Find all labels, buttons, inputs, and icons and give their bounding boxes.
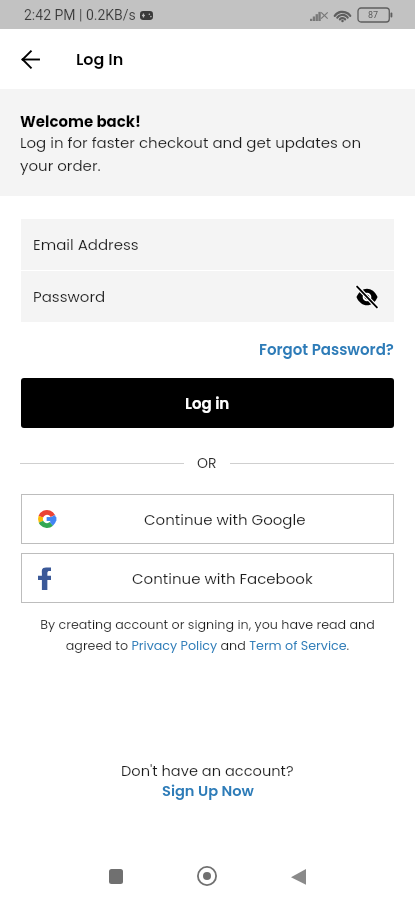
button[interactable]: Back — [275, 853, 321, 899]
button[interactable]: Log in — [21, 378, 394, 428]
staticText: Continue with Facebook — [132, 568, 313, 589]
staticText: Welcome back! — [20, 111, 141, 132]
staticText: Sign Up Now — [162, 781, 254, 801]
staticText: Log In — [76, 48, 124, 70]
staticText: Log in — [185, 393, 230, 414]
staticText: Log in for faster checkout and get updat… — [20, 132, 395, 176]
staticText: Don't have an account? — [121, 761, 294, 781]
button[interactable]: Password — [21, 271, 394, 322]
button[interactable]: Back — [10, 39, 50, 79]
button[interactable]: Continue with Google — [21, 494, 394, 544]
staticText: Forgot Password? — [259, 339, 394, 360]
button[interactable]: Continue with Facebook — [21, 553, 394, 603]
button[interactable]: Forgot Password? — [259, 339, 394, 360]
button[interactable]: Sign Up Now — [162, 781, 254, 801]
staticText: 2:42 PM | 0.2KB/s — [24, 7, 136, 23]
staticText: 87 — [368, 10, 379, 21]
button[interactable]: Show password — [352, 282, 382, 312]
staticText: OR — [197, 453, 217, 473]
button[interactable]: Email Address — [21, 219, 394, 270]
button[interactable]: Recent apps — [93, 853, 139, 899]
button[interactable]: Home — [184, 853, 230, 899]
staticText: Email Address — [33, 234, 139, 255]
staticText: Password — [33, 286, 106, 307]
staticText: Continue with Google — [144, 509, 306, 530]
staticText: By creating account or signing in, you h… — [30, 616, 385, 654]
